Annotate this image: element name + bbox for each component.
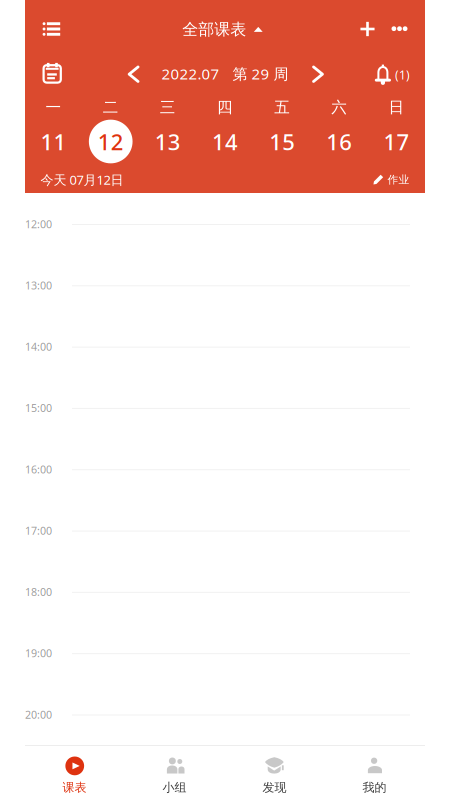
button[interactable]: More xyxy=(379,7,419,51)
staticText: 16 xyxy=(326,127,352,157)
staticText: 11 xyxy=(41,127,67,157)
button[interactable]: 发现 xyxy=(225,746,325,800)
staticText: 第 29 周 xyxy=(233,63,289,84)
staticText: 今天 07月12日 xyxy=(40,171,123,188)
staticText: 四 xyxy=(217,98,233,117)
staticText: 18:00 xyxy=(25,585,52,599)
staticText: 我的 xyxy=(362,780,386,795)
staticText: 14 xyxy=(212,127,238,157)
button[interactable]: Calendar xyxy=(30,53,74,93)
staticText: 二 xyxy=(103,98,119,117)
staticText: 日 xyxy=(388,98,404,117)
staticText: 19:00 xyxy=(25,646,52,660)
staticText: 12:00 xyxy=(25,217,52,231)
button[interactable]: 课表 xyxy=(25,746,125,800)
staticText: 17 xyxy=(383,127,409,157)
staticText: (1) xyxy=(395,67,410,83)
staticText: 2022.07 xyxy=(162,63,220,84)
staticText: 13:00 xyxy=(25,278,52,293)
staticText: 五 xyxy=(274,98,290,117)
staticText: 15:00 xyxy=(25,401,52,415)
button[interactable]: 小组 xyxy=(125,746,225,800)
staticText: 14:00 xyxy=(25,339,52,354)
button[interactable]: Menu xyxy=(29,7,73,51)
staticText: 三 xyxy=(160,98,176,117)
staticText: 13 xyxy=(155,127,181,157)
button[interactable]: Next week xyxy=(301,55,335,93)
staticText: 16:00 xyxy=(25,462,52,477)
staticText: 全部课表 xyxy=(182,19,246,39)
button[interactable]: Add xyxy=(347,7,387,51)
staticText: 12 xyxy=(98,127,124,157)
button[interactable]: 作业 xyxy=(373,167,409,193)
staticText: 课表 xyxy=(62,780,86,795)
button[interactable]: 全部课表 xyxy=(182,7,263,51)
staticText: 17:00 xyxy=(25,523,52,538)
button[interactable]: 我的 xyxy=(325,746,425,800)
staticText: 作业 xyxy=(388,173,410,186)
staticText: 发现 xyxy=(262,780,286,795)
staticText: 小组 xyxy=(162,780,186,795)
button[interactable]: Previous week xyxy=(117,55,151,93)
staticText: 一 xyxy=(46,98,62,117)
button[interactable]: (1) xyxy=(375,56,410,94)
staticText: 六 xyxy=(331,98,347,117)
staticText: 15 xyxy=(269,127,295,157)
staticText: 20:00 xyxy=(25,707,52,722)
